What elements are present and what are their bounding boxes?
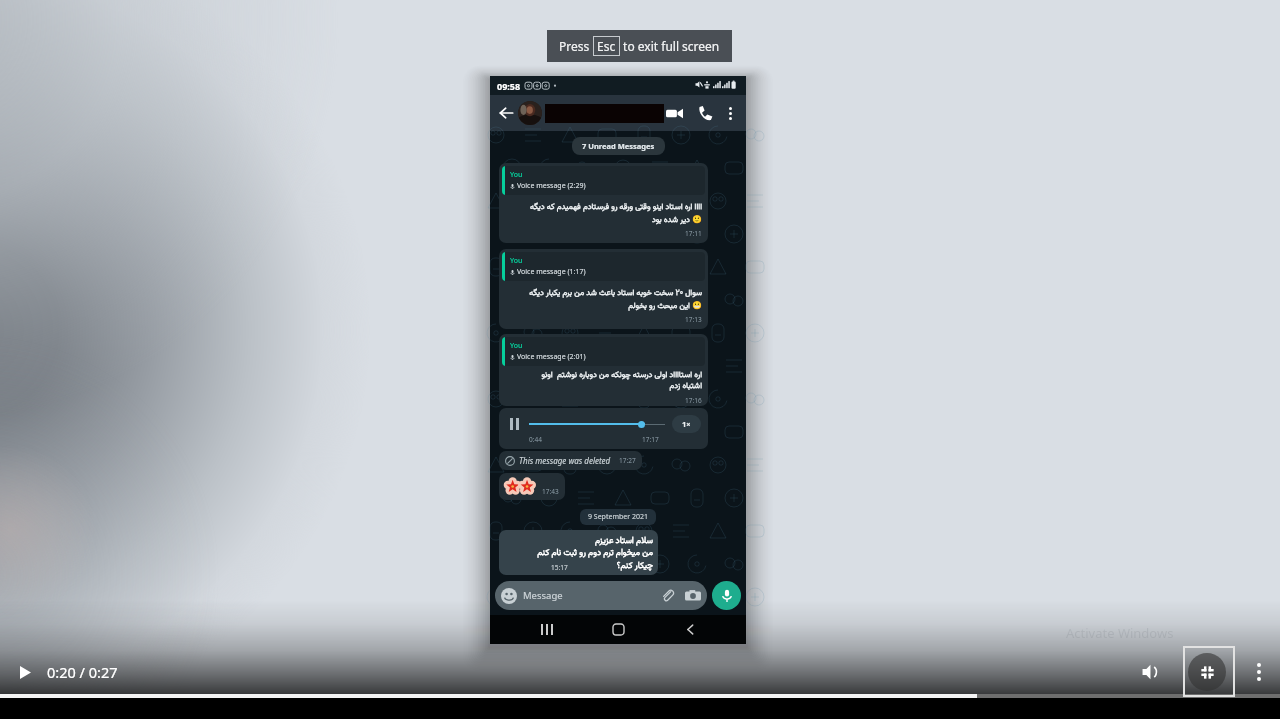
staticText: Voice message (2:29) — [517, 181, 586, 191]
button[interactable]: Video call — [664, 103, 684, 123]
staticText: 15:17 — [551, 563, 568, 572]
staticText: 09:58 — [497, 80, 521, 92]
button[interactable]: Pause — [506, 416, 522, 432]
staticText: سلام استاد عزیزم من میخوام ترم دوم رو ثب… — [504, 534, 653, 559]
button[interactable]: Back — [675, 615, 705, 644]
staticText: You — [510, 256, 523, 266]
staticText: 17:16 — [685, 396, 702, 405]
button[interactable]: This message was deleted — [499, 451, 642, 470]
staticText: چیکار کنم؟ — [616, 559, 653, 572]
staticText: 17:43 — [542, 487, 559, 496]
button[interactable]: More options — [719, 102, 741, 124]
staticText: You — [510, 170, 523, 180]
button[interactable]: You — [499, 163, 708, 243]
staticText: Press — [559, 38, 593, 54]
button[interactable]: Mute — [1134, 655, 1168, 689]
staticText: to exit full screen — [620, 38, 720, 54]
button[interactable]: Play — [12, 659, 38, 685]
button[interactable]: Back — [495, 102, 517, 124]
staticText: Esc — [597, 38, 616, 54]
button[interactable]: 1× — [672, 415, 701, 433]
staticText: Voice message (2:01) — [517, 352, 586, 362]
button[interactable]: More options — [1246, 659, 1272, 685]
button[interactable]: 7 Unread Messages — [572, 137, 665, 155]
button[interactable]: Pause — [499, 408, 708, 449]
staticText: اره استااااد اولی درسته چونکه من دوباره … — [505, 369, 702, 393]
staticText: 0:20 / 0:27 — [47, 662, 118, 682]
button[interactable]: Message — [495, 581, 707, 610]
staticText: Voice message (1:17) — [517, 267, 586, 277]
staticText: 7 Unread Messages — [582, 141, 655, 151]
staticText: سوال ۲۰ سخت خوبه استاد باعث شد من برم یک… — [505, 287, 702, 312]
staticText: You — [510, 341, 523, 351]
staticText: Activate Windows — [1066, 624, 1174, 642]
staticText: 9 September 2021 — [588, 512, 648, 522]
button[interactable]: Home — [603, 615, 633, 644]
staticText: This message was deleted — [519, 455, 611, 466]
staticText: 17:27 — [619, 456, 636, 465]
staticText: 0:44 — [529, 435, 542, 444]
staticText: 1× — [682, 419, 691, 429]
button[interactable]: سلام استاد عزیزم من میخوام ترم دوم رو ثب… — [499, 530, 658, 575]
button[interactable]: Record voice message — [712, 581, 741, 610]
staticText: 17:13 — [685, 315, 702, 324]
button[interactable]: Recent apps — [532, 615, 562, 644]
button[interactable]: Exit full screen — [1181, 651, 1233, 693]
staticText: 17:11 — [685, 229, 702, 238]
button[interactable]: Voice call — [694, 102, 716, 124]
button[interactable]: Attach — [660, 588, 675, 603]
button[interactable]: 17:43 — [499, 473, 565, 500]
staticText: اااا اره استاد اینو وقتی ورقه رو فرستادم… — [505, 201, 702, 226]
button[interactable]: You — [499, 249, 708, 329]
button[interactable]: You — [499, 334, 708, 406]
staticText: 17:17 — [642, 435, 659, 444]
staticText: Message — [523, 589, 563, 602]
button[interactable]: Camera — [685, 588, 701, 604]
